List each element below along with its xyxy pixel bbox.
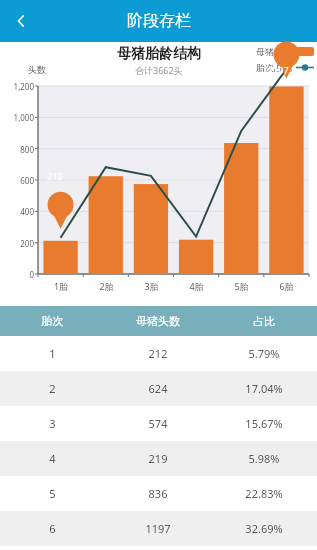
staticText: 胎次 <box>0 314 105 328</box>
staticText: 母猪头数 <box>256 46 292 57</box>
staticText: 212 <box>105 346 211 361</box>
staticText: 5.98% <box>211 451 317 466</box>
staticText: 5.79% <box>211 346 317 361</box>
staticText: 212 <box>47 170 63 182</box>
staticText: 6胎 <box>264 280 309 292</box>
staticText: 15.67% <box>211 416 317 431</box>
staticText: 624 <box>105 381 211 396</box>
staticText: 4 <box>0 451 105 466</box>
staticText: 22.83% <box>211 486 317 501</box>
staticText: 1,000 <box>2 112 34 123</box>
button[interactable]: 2 <box>0 371 317 406</box>
staticText: 200 <box>2 238 34 249</box>
button[interactable]: 1 <box>0 336 317 371</box>
staticText: 母猪胎龄结构 <box>117 45 201 63</box>
staticText: 1胎 <box>38 280 84 292</box>
staticText: 5胎 <box>219 280 264 292</box>
staticText: 1197 <box>105 521 211 536</box>
staticText: 219 <box>105 451 211 466</box>
staticText: 占比 <box>211 314 317 328</box>
staticText: 32.69% <box>211 521 317 536</box>
button[interactable]: 4 <box>0 441 317 476</box>
staticText: 合计3662头 <box>135 64 183 76</box>
staticText: 3 <box>0 416 105 431</box>
staticText: 836 <box>105 486 211 501</box>
staticText: 4胎 <box>174 280 219 292</box>
staticText: 0 <box>2 269 34 280</box>
staticText: 头数 <box>28 64 46 75</box>
button[interactable]: 3 <box>0 406 317 441</box>
staticText: 2胎 <box>84 280 129 292</box>
staticText: 17.04% <box>211 381 317 396</box>
staticText: 母猪头数 <box>105 314 211 328</box>
staticText: 574 <box>105 416 211 431</box>
button[interactable]: 5 <box>0 476 317 511</box>
staticText: 400 <box>2 206 34 217</box>
staticText: 阶段存栏 <box>127 11 191 31</box>
staticText: 1 <box>0 346 105 361</box>
staticText: 1,200 <box>2 81 34 92</box>
staticText: 胎次占比 <box>256 62 292 73</box>
staticText: 3胎 <box>129 280 174 292</box>
staticText: 800 <box>2 144 34 155</box>
button[interactable]: 6 <box>0 511 317 546</box>
staticText: 6 <box>0 521 105 536</box>
staticText: 600 <box>2 175 34 186</box>
staticText: 2 <box>0 381 105 396</box>
staticText: 5 <box>0 486 105 501</box>
staticText: 1197 <box>268 64 289 76</box>
button[interactable]: Back <box>0 0 42 42</box>
